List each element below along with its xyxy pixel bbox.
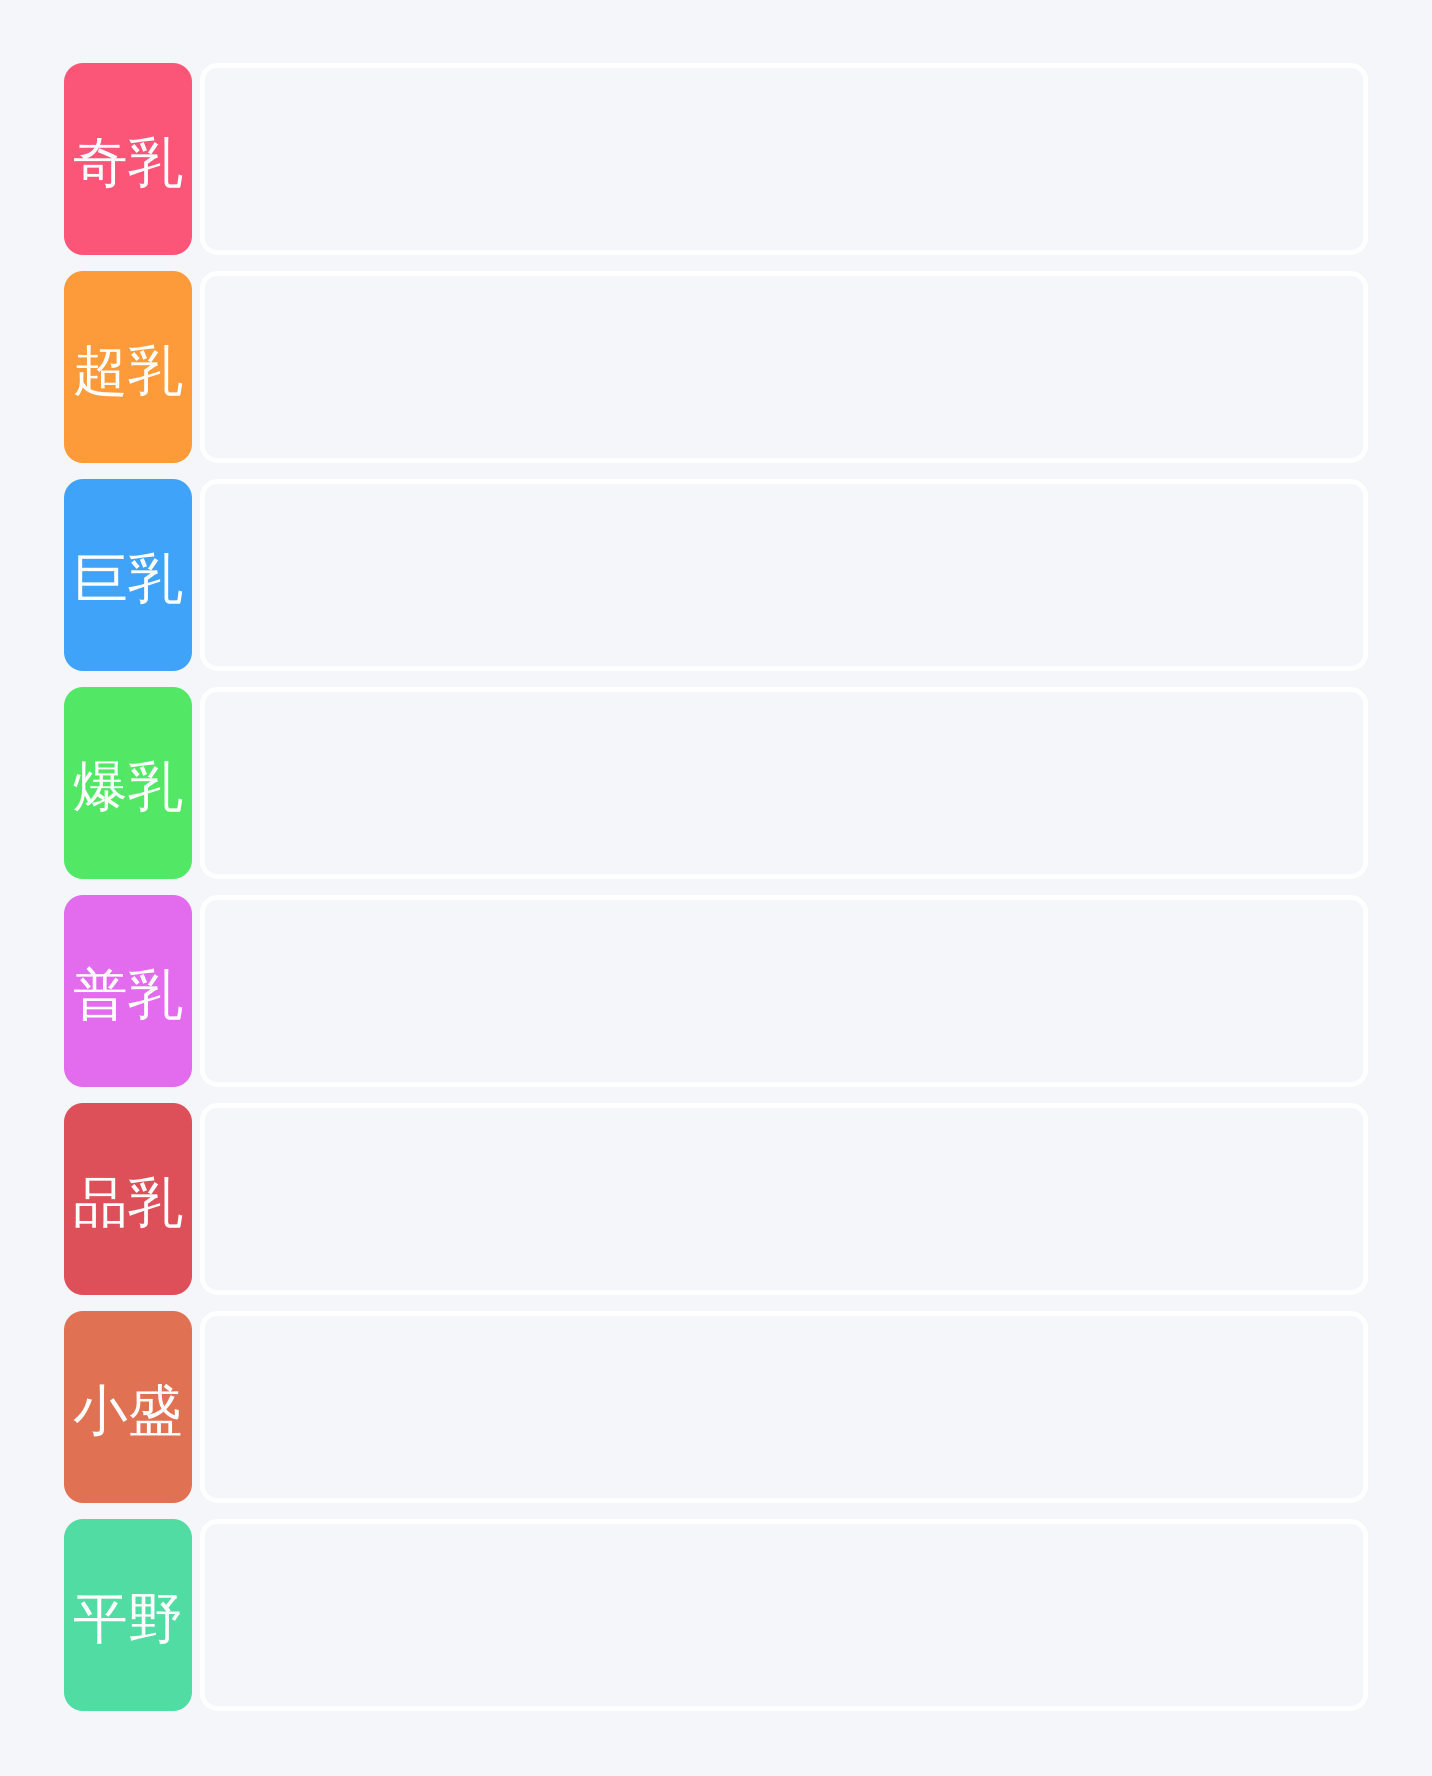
- staticText: 巨乳: [73, 545, 183, 612]
- button[interactable]: 爆乳: [0, 687, 1432, 879]
- button[interactable]: 奇乳: [0, 63, 1432, 255]
- button[interactable]: 超乳: [0, 271, 1432, 463]
- staticText: 超乳: [73, 337, 183, 404]
- staticText: 奇乳: [73, 129, 183, 196]
- button[interactable]: 平野: [0, 1519, 1432, 1711]
- staticText: 小盛: [73, 1377, 183, 1444]
- staticText: 平野: [73, 1585, 183, 1652]
- button[interactable]: 巨乳: [0, 479, 1432, 671]
- button[interactable]: 普乳: [0, 895, 1432, 1087]
- staticText: 普乳: [73, 961, 183, 1028]
- button[interactable]: 小盛: [0, 1311, 1432, 1503]
- staticText: 品乳: [73, 1169, 183, 1236]
- button[interactable]: 品乳: [0, 1103, 1432, 1295]
- staticText: 爆乳: [73, 753, 183, 820]
